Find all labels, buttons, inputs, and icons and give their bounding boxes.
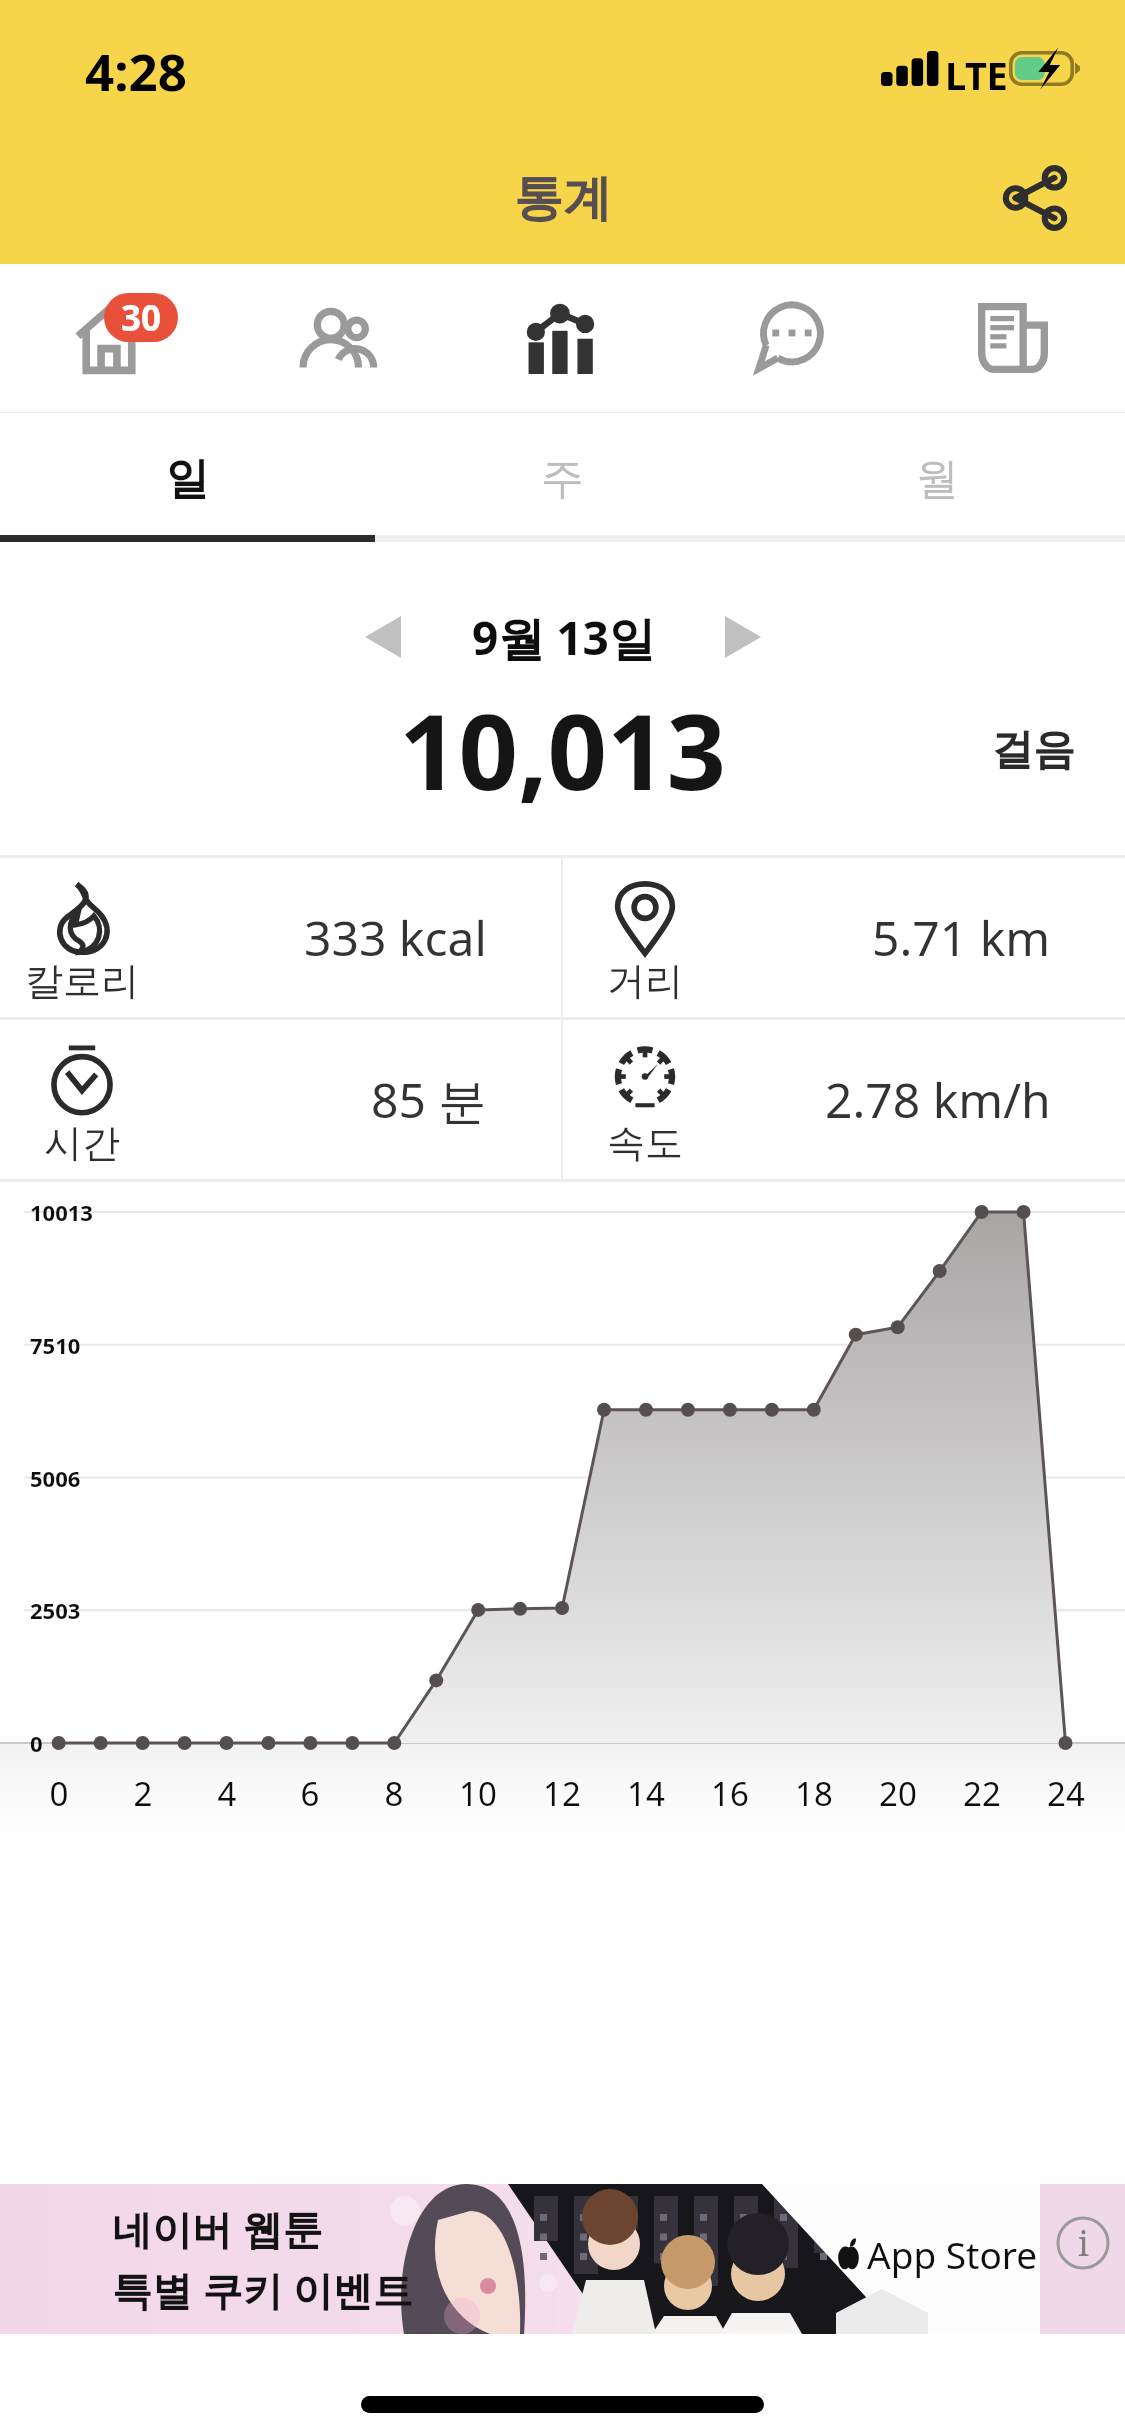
staticText: i: [1078, 2220, 1089, 2266]
staticText: 16: [690, 1771, 770, 1816]
staticText: 시간: [44, 1119, 120, 1167]
button[interactable]: Ad info: [1040, 2184, 1125, 2334]
staticText: 24: [1026, 1771, 1106, 1816]
staticText: 월: [916, 452, 959, 506]
button[interactable]: 시간: [0, 1020, 561, 1179]
button[interactable]: News: [900, 264, 1125, 412]
button[interactable]: Statistics: [450, 264, 675, 412]
staticText: 9월 13일: [472, 606, 655, 669]
staticText: 85 분: [371, 1067, 487, 1133]
staticText: 속도: [607, 1119, 683, 1167]
staticText: 걸음: [991, 724, 1075, 777]
staticText: 칼로리: [25, 957, 139, 1005]
staticText: 10013: [30, 1197, 100, 1227]
staticText: 주: [541, 452, 584, 506]
button[interactable]: Previous day: [333, 587, 433, 687]
button[interactable]: Chat: [675, 264, 900, 412]
button[interactable]: 칼로리: [0, 858, 561, 1017]
staticText: App Store: [867, 2229, 1038, 2279]
staticText: 특별 쿠키 이벤트: [112, 2262, 413, 2317]
button[interactable]: 주: [375, 413, 750, 535]
button[interactable]: Friends: [225, 264, 450, 412]
button[interactable]: 거리: [563, 858, 1125, 1017]
button[interactable]: 월: [750, 413, 1125, 535]
staticText: 18: [774, 1771, 854, 1816]
button[interactable]: 속도: [563, 1020, 1125, 1179]
button[interactable]: Share: [987, 150, 1083, 246]
staticText: 6: [270, 1771, 350, 1816]
staticText: 12: [522, 1771, 602, 1816]
staticText: 4: [187, 1771, 267, 1816]
staticText: 14: [606, 1771, 686, 1816]
staticText: 네이버 웹툰: [112, 2201, 323, 2256]
button[interactable]: Home: [0, 264, 225, 412]
staticText: 20: [858, 1771, 938, 1816]
staticText: 30: [121, 294, 162, 342]
staticText: 10,013: [399, 679, 727, 821]
staticText: 4:28: [85, 36, 187, 105]
staticText: 2503: [30, 1595, 100, 1625]
button[interactable]: 일: [0, 413, 375, 535]
staticText: 7510: [30, 1330, 100, 1360]
staticText: 0: [30, 1728, 100, 1758]
staticText: LTE: [945, 49, 1008, 101]
staticText: 10: [438, 1771, 518, 1816]
button[interactable]: Next day: [693, 587, 793, 687]
button[interactable]: 네이버 웹툰: [0, 2184, 1125, 2334]
staticText: 거리: [607, 957, 683, 1005]
staticText: 통계: [514, 168, 612, 230]
staticText: 333 kcal: [304, 905, 487, 970]
staticText: 5.71 km: [872, 905, 1051, 970]
staticText: 8: [354, 1771, 434, 1816]
staticText: 2.78 km/h: [825, 1067, 1051, 1132]
staticText: 0: [19, 1771, 99, 1816]
staticText: 22: [942, 1771, 1022, 1816]
staticText: 일: [166, 452, 209, 506]
staticText: 5006: [30, 1463, 100, 1493]
staticText: 2: [103, 1771, 183, 1816]
